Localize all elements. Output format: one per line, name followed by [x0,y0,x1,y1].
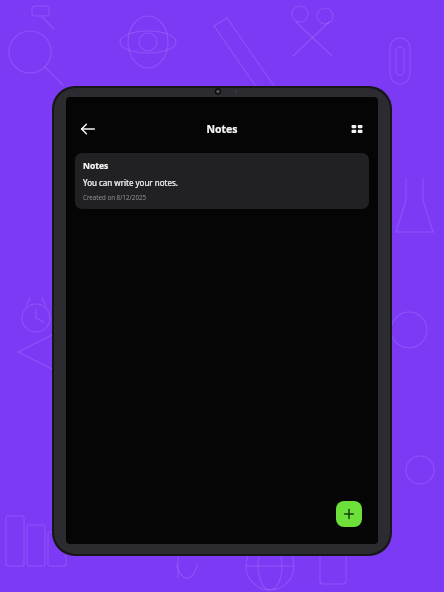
button[interactable]: Notes [75,153,369,209]
button[interactable]: Change view [345,117,369,141]
staticText: Created on 8/12/2025 [83,193,146,201]
staticText: You can write your notes. [83,177,178,188]
staticText: Notes [206,122,238,136]
staticText: Notes [83,160,109,172]
button[interactable]: Add note [336,501,362,527]
button[interactable]: Back [75,116,101,142]
